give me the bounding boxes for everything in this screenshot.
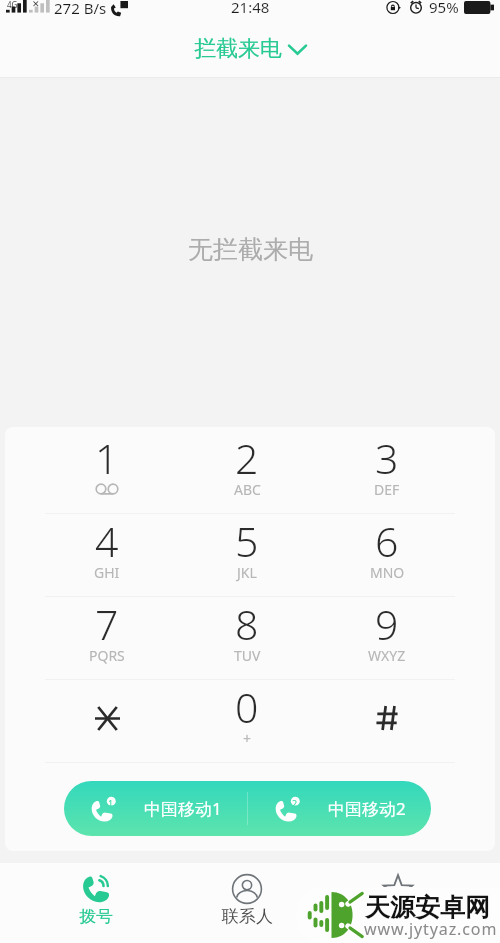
staticText: 拦截来电 [194, 35, 282, 63]
staticText: 0 [235, 679, 259, 735]
button[interactable]: 拨号 [36, 863, 156, 943]
button[interactable]: 2 [248, 781, 431, 836]
staticText: 6 [375, 513, 399, 569]
staticText: MNO [370, 563, 405, 582]
staticText: ✕ [32, 0, 40, 9]
staticText: 3 [375, 430, 399, 486]
button[interactable] [37, 680, 177, 762]
button[interactable]: 2 [177, 431, 317, 513]
staticText: WXYZ [368, 646, 406, 665]
button[interactable]: 9 [317, 597, 457, 679]
staticText: 1 [108, 797, 114, 809]
staticText: 8 [235, 596, 259, 652]
staticText: www.jytyaz.com [364, 918, 498, 940]
staticText: 4 [95, 513, 119, 569]
button[interactable]: 8 [177, 597, 317, 679]
button[interactable]: 拦截来电 [180, 30, 321, 68]
button[interactable]: 联系人 [187, 863, 307, 943]
staticText: 中国移动1 [144, 797, 222, 820]
staticText: 中国移动2 [328, 797, 406, 820]
staticText: GHI [94, 563, 120, 582]
button[interactable]: 1 [37, 431, 177, 513]
staticText: 1 [95, 430, 119, 486]
button[interactable]: 5 [177, 514, 317, 596]
staticText: 95% [429, 0, 459, 17]
staticText: ABC [234, 480, 261, 499]
staticText: 21:48 [231, 0, 270, 17]
staticText: 2 [292, 797, 298, 809]
button[interactable] [317, 680, 457, 762]
staticText: 5 [235, 513, 259, 569]
button[interactable]: 1 [64, 781, 247, 836]
staticText: JKL [237, 563, 257, 582]
staticText: 4G [7, 0, 18, 10]
button[interactable]: 4 [37, 514, 177, 596]
staticText: 9 [375, 596, 399, 652]
staticText: DEF [374, 480, 400, 499]
staticText: 272 B/s [54, 0, 107, 18]
button[interactable]: 7 [37, 597, 177, 679]
button[interactable]: 发现 [338, 863, 458, 943]
staticText: TUV [234, 646, 261, 665]
staticText: 发现 [381, 906, 415, 927]
button[interactable]: 3 [317, 431, 457, 513]
staticText: + [243, 729, 252, 748]
staticText: 联系人 [222, 906, 273, 927]
staticText: 拨号 [79, 906, 113, 927]
staticText: 2 [235, 430, 259, 486]
staticText: 7 [95, 596, 119, 652]
staticText: 无拦截来电 [188, 234, 313, 265]
button[interactable]: 6 [317, 514, 457, 596]
staticText: PQRS [89, 646, 125, 665]
staticText: 天源安卓网 [365, 892, 490, 923]
button[interactable]: 0 [177, 680, 317, 762]
